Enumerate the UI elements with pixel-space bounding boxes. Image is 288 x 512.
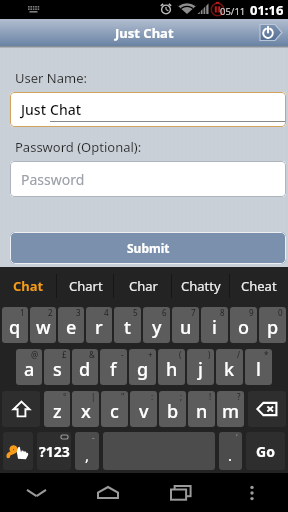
button[interactable]: d <box>72 349 98 385</box>
button[interactable]: j <box>187 349 214 385</box>
button[interactable]: k <box>216 349 243 385</box>
staticText: * <box>264 349 269 360</box>
staticText: 0 <box>278 307 283 318</box>
staticText: Just Chat <box>115 24 174 42</box>
button[interactable]: h <box>158 349 185 385</box>
staticText: : <box>151 391 154 402</box>
staticText: @ <box>31 349 39 360</box>
button[interactable]: g <box>129 349 156 385</box>
button[interactable]: Shift <box>2 391 40 427</box>
staticText: 2 <box>48 307 53 318</box>
staticText: d <box>79 357 91 382</box>
staticText: f <box>110 357 117 382</box>
button[interactable]: o <box>230 307 257 343</box>
staticText: ° <box>63 391 67 402</box>
staticText: 5 <box>133 307 138 318</box>
button[interactable]: y <box>143 307 170 343</box>
button[interactable]: c <box>101 391 128 427</box>
button[interactable]: Gesture typing <box>3 432 33 470</box>
button[interactable]: f <box>100 349 127 385</box>
staticText: 8 <box>220 307 225 318</box>
button[interactable]: n <box>188 391 215 427</box>
staticText: b <box>167 399 179 424</box>
button[interactable]: q <box>2 307 28 343</box>
staticText: z <box>53 399 62 424</box>
staticText: , <box>85 445 90 465</box>
staticText: s <box>53 357 62 382</box>
button[interactable]: p <box>259 307 286 343</box>
staticText: - <box>121 349 124 360</box>
staticText: q <box>9 315 21 340</box>
staticText: a <box>24 357 35 382</box>
staticText: Submit <box>127 240 170 256</box>
staticText: v <box>139 399 149 424</box>
button[interactable]: Go <box>246 432 285 470</box>
staticText: + <box>148 349 153 360</box>
staticText: 1 <box>20 307 25 318</box>
staticText: e <box>66 315 77 340</box>
staticText: j <box>198 357 203 382</box>
button[interactable]: a <box>16 349 42 385</box>
staticText: Cheat <box>241 277 277 295</box>
staticText: 3 <box>76 307 81 318</box>
button[interactable]: x <box>72 391 99 427</box>
staticText: x <box>81 399 91 424</box>
staticText: u <box>180 315 192 340</box>
button[interactable]: i <box>201 307 228 343</box>
staticText: Chat <box>13 277 44 295</box>
staticText: Just <box>21 100 50 119</box>
staticText: t <box>124 315 131 340</box>
button[interactable]: t <box>114 307 141 343</box>
staticText: 9 <box>249 307 254 318</box>
button[interactable]: Password <box>10 161 286 197</box>
button[interactable]: s <box>44 349 70 385</box>
button[interactable]: ?123 <box>37 432 71 470</box>
staticText: ? <box>237 391 241 402</box>
staticText: ! <box>209 391 212 402</box>
staticText: w <box>36 315 51 340</box>
button[interactable]: Char <box>114 267 172 304</box>
staticText: " <box>121 391 125 402</box>
button[interactable]: b <box>159 391 186 427</box>
staticText: ) <box>208 349 211 360</box>
button[interactable]: . <box>219 432 242 470</box>
button[interactable]: Chat <box>0 267 57 304</box>
button[interactable]: l <box>245 349 272 385</box>
button[interactable]: Hide keyboard <box>0 473 72 512</box>
staticText: 01:16 <box>250 1 284 19</box>
staticText: - <box>92 432 95 443</box>
button[interactable]: e <box>58 307 84 343</box>
staticText: User Name: <box>15 69 87 87</box>
staticText: y <box>152 315 162 340</box>
button[interactable]: r <box>86 307 112 343</box>
staticText: & <box>89 349 95 360</box>
button[interactable]: More options <box>216 473 288 512</box>
button[interactable]: Home <box>72 473 144 512</box>
staticText: £ <box>62 349 67 360</box>
button[interactable]: w <box>30 307 56 343</box>
button[interactable]: Chatty <box>172 267 230 304</box>
staticText: Char <box>129 277 158 295</box>
staticText: m <box>222 399 240 424</box>
button[interactable]: Backspace <box>248 391 286 427</box>
button[interactable]: u <box>172 307 199 343</box>
button[interactable]: v <box>130 391 157 427</box>
staticText: ' <box>236 432 238 443</box>
button[interactable]: z <box>44 391 70 427</box>
button[interactable]: Chart <box>57 267 114 304</box>
button[interactable]: Just <box>10 92 286 127</box>
button[interactable]: , <box>75 432 99 470</box>
staticText: Go <box>256 442 275 461</box>
button[interactable]: Power / Disconnect <box>257 23 283 42</box>
button[interactable]: Recent apps <box>144 473 216 512</box>
button[interactable]: Cheat <box>230 267 288 304</box>
staticText: / <box>237 349 240 360</box>
button[interactable]: m <box>217 391 244 427</box>
staticText: 7 <box>191 307 196 318</box>
staticText: n <box>196 399 208 424</box>
staticText: l <box>256 357 261 382</box>
staticText: Chat <box>50 100 82 119</box>
staticText: 6 <box>162 307 167 318</box>
button[interactable]: Submit <box>10 232 286 264</box>
